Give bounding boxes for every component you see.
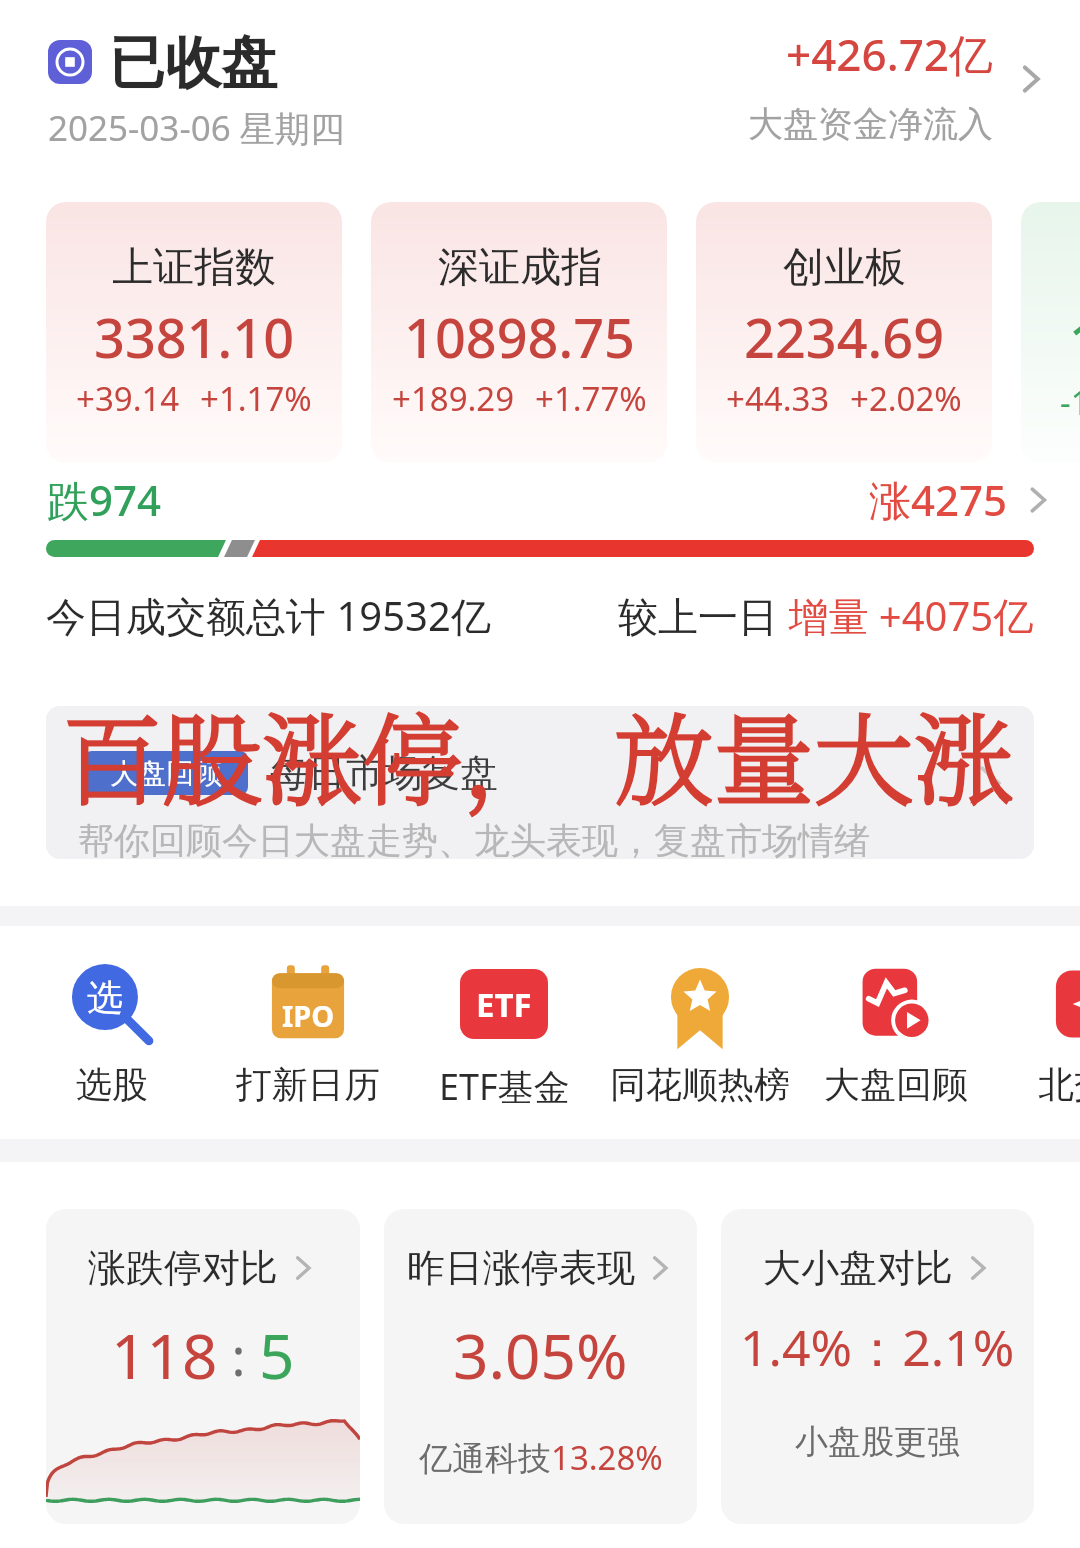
staticText: 大盘回顾 — [110, 756, 222, 791]
staticText: 昨日涨停表现 — [407, 1244, 635, 1292]
staticText: 118 — [111, 1313, 218, 1397]
staticText: ETF基金 — [439, 1062, 570, 1111]
staticText: 选股 — [76, 1062, 148, 1107]
staticText: 深证成指 — [438, 242, 602, 294]
staticText: +1.77% — [535, 376, 647, 421]
staticText: +189.29 — [392, 376, 515, 421]
button[interactable]: 涨跌停对比 — [46, 1209, 360, 1524]
button[interactable]: 同花顺热榜 — [602, 960, 798, 1107]
staticText: 涨跌停对比 — [88, 1244, 278, 1292]
staticText: 跌974 — [47, 471, 162, 528]
staticText: ETF — [476, 982, 532, 1027]
staticText: 大盘资金净流入 — [748, 102, 993, 146]
staticText: 2234.69 — [744, 300, 945, 374]
staticText: 3.05% — [453, 1313, 628, 1397]
button[interactable]: 昨日涨停表现 — [384, 1209, 697, 1524]
button[interactable]: 资金流向 — [1014, 62, 1048, 96]
staticText: 大盘回顾 — [824, 1062, 968, 1107]
staticText: 10898.75 — [404, 300, 635, 374]
staticText: 帮你回顾今日大盘走势、龙头表现，复盘市场情绪 — [78, 818, 870, 859]
button[interactable]: ETF — [406, 960, 602, 1111]
staticText: 5 — [259, 1313, 295, 1397]
staticText: : — [218, 1320, 259, 1391]
staticText: 小盘股更强 — [795, 1421, 960, 1463]
button[interactable]: 大盘回顾 — [798, 960, 994, 1107]
button[interactable]: 创业板 — [696, 202, 992, 463]
staticText: 选 — [87, 975, 123, 1020]
button[interactable]: 大小盘对比 — [721, 1209, 1034, 1524]
button[interactable]: IPO — [210, 960, 406, 1107]
button[interactable]: 北证50 — [1021, 202, 1080, 463]
staticText: 上证指数 — [112, 242, 276, 294]
button[interactable]: 大盘回顾 — [46, 706, 1034, 859]
staticText: 较上一日 增量 +4075亿 — [618, 588, 1034, 643]
staticText: 1.4%：2.1% — [740, 1313, 1015, 1381]
staticText: 同花顺热榜 — [610, 1062, 790, 1107]
staticText: 1072.63 — [1069, 304, 1080, 378]
staticText: 创业板 — [783, 242, 906, 294]
staticText: 亿通科技13.28% — [419, 1435, 663, 1480]
button[interactable]: 选 — [14, 960, 210, 1107]
staticText: 今日成交额总计 19532亿 — [46, 588, 491, 643]
staticText: 大小盘对比 — [763, 1244, 953, 1292]
staticText: +2.02% — [850, 376, 962, 421]
staticText: IPO — [282, 996, 335, 1035]
staticText: 2025-03-06 星期四 — [48, 104, 345, 152]
staticText: +1.17% — [200, 376, 312, 421]
other: 北交所 — [1048, 960, 1080, 1048]
staticText: +44.33 — [726, 376, 830, 421]
staticText: 涨4275 — [869, 471, 1008, 528]
button[interactable]: 上证指数 — [46, 202, 342, 463]
button[interactable]: 深证成指 — [371, 202, 667, 463]
staticText: +39.14 — [76, 376, 180, 421]
staticText: 打新日历 — [236, 1062, 380, 1107]
other: 大盘回顾 — [852, 960, 940, 1048]
staticText: 已收盘 — [109, 28, 277, 99]
staticText: 北交所 — [1038, 1062, 1080, 1107]
staticText: 百股涨停， 放量大涨 — [62, 682, 1014, 826]
staticText: 每日市场复盘 — [270, 749, 498, 797]
staticText: -11.87 — [1060, 380, 1080, 425]
staticText: +426.72亿 — [786, 24, 993, 84]
button[interactable]: 北交所 — [994, 960, 1080, 1107]
staticText: 3381.10 — [94, 300, 295, 374]
